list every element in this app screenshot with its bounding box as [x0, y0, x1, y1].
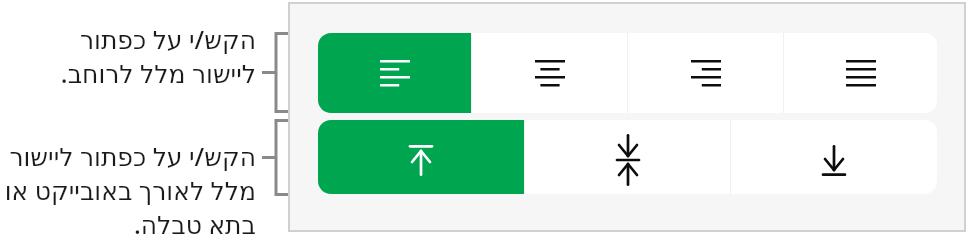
- staticText: הקש/י על כפתור ליישור מלל לרוחב.: [0, 22, 256, 90]
- button[interactable]: Align center: [472, 33, 627, 113]
- button[interactable]: Justify: [784, 33, 937, 113]
- button[interactable]: Align top: [318, 120, 524, 194]
- button[interactable]: Align bottom: [731, 120, 937, 194]
- button[interactable]: Align left: [318, 33, 471, 113]
- button[interactable]: Align right: [628, 33, 783, 113]
- button[interactable]: Align middle: [525, 120, 730, 194]
- staticText: הקש/י על כפתור ליישור מלל לאורך באובייקט…: [0, 139, 256, 241]
